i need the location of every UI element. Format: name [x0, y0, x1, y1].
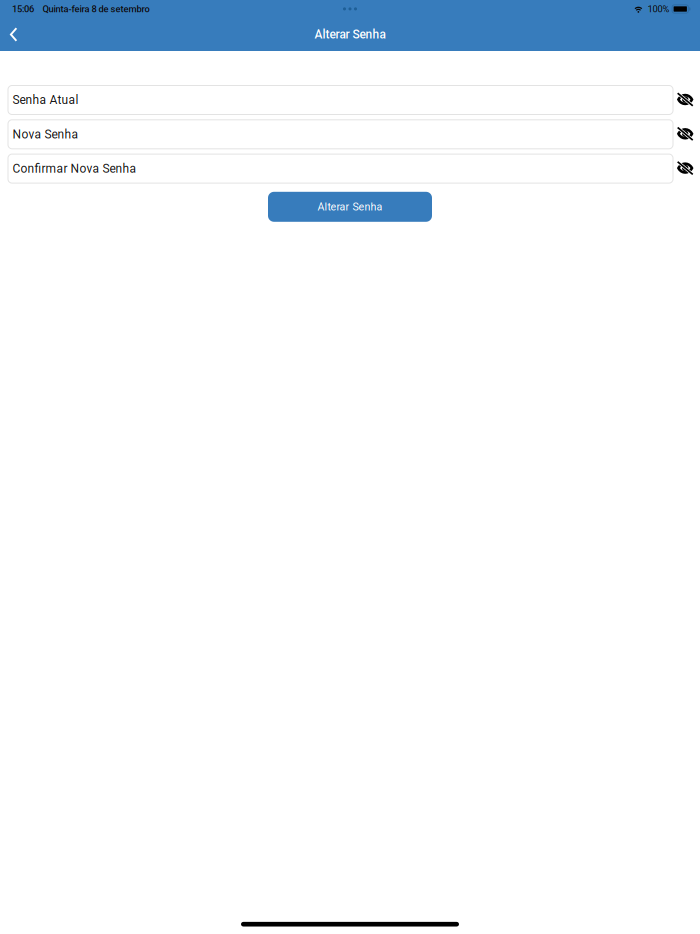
button[interactable]: Mostrar Senha Atual	[673, 85, 700, 114]
staticText: Nova Senha	[12, 127, 78, 141]
staticText: 100%	[648, 3, 670, 14]
button[interactable]: Alterar Senha	[268, 192, 432, 222]
staticText: Alterar Senha	[317, 200, 382, 213]
button[interactable]: Voltar	[0, 18, 26, 51]
staticText: Senha Atual	[12, 93, 78, 107]
button[interactable]: Mostrar Nova Senha	[673, 120, 700, 149]
staticText: Quinta-feira 8 de setembro	[42, 3, 149, 14]
staticText: Confirmar Nova Senha	[12, 162, 136, 176]
staticText: 15:06	[12, 3, 34, 14]
button[interactable]: Mostrar Confirmar Nova Senha	[673, 154, 700, 183]
staticText: Alterar Senha	[314, 27, 385, 42]
